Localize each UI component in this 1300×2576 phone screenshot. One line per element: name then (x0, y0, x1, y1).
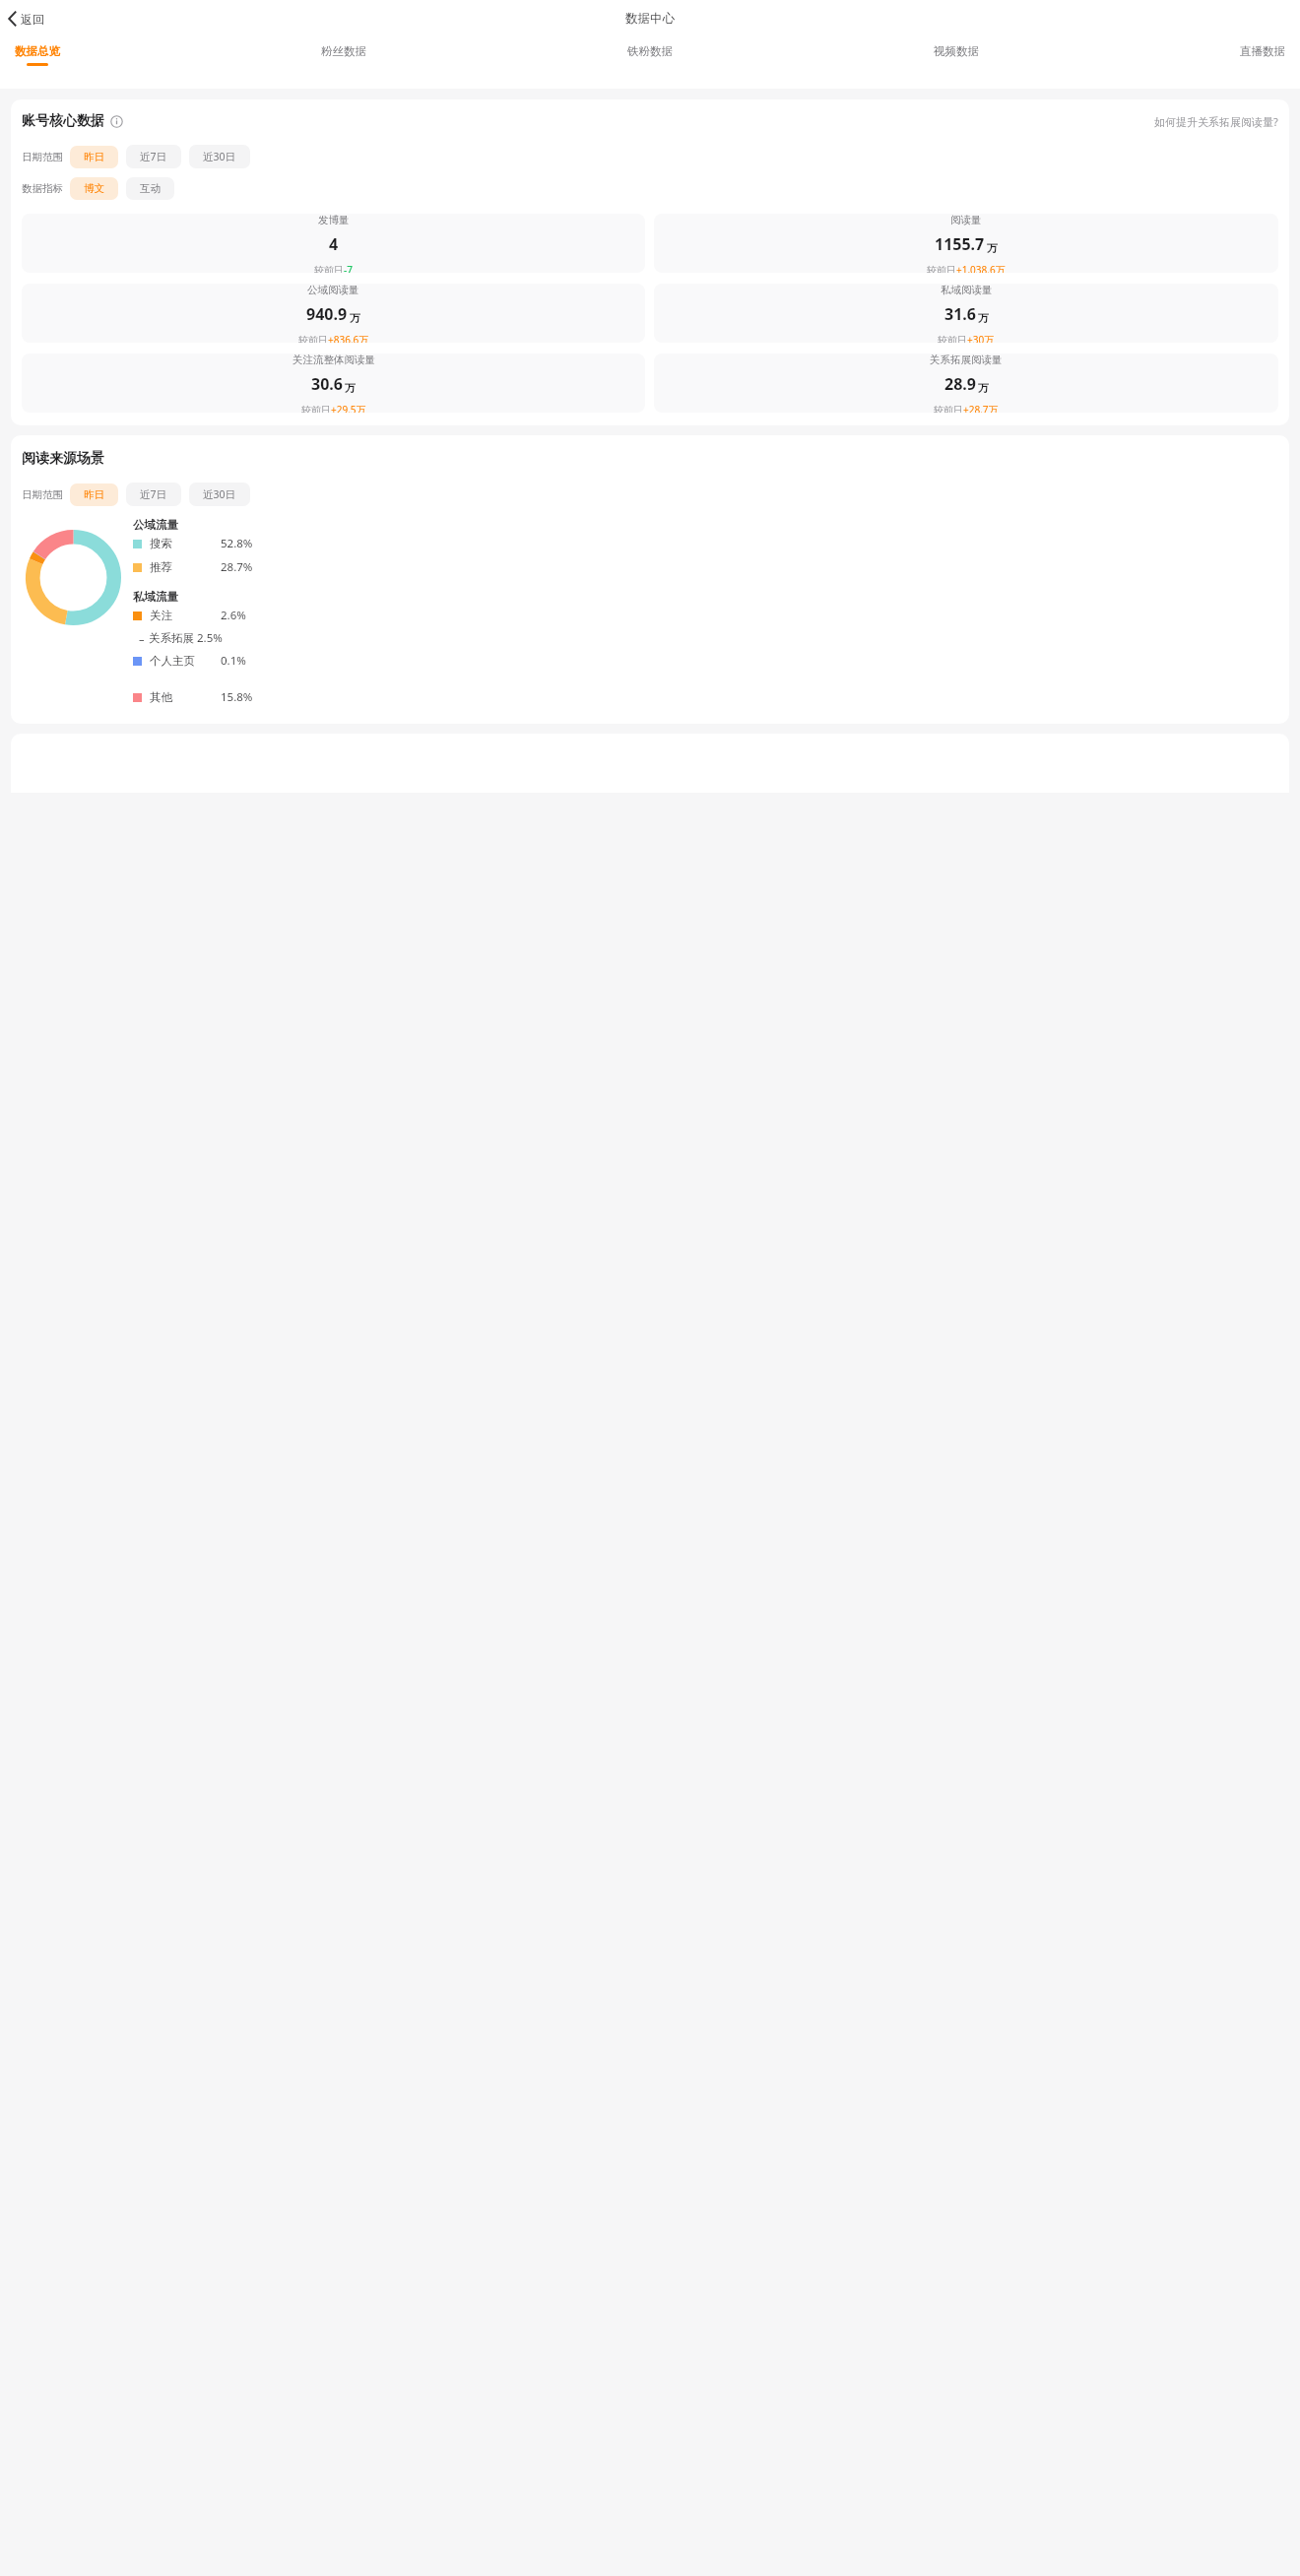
button[interactable]: 互动 (126, 177, 174, 200)
staticText: 近7日 (140, 487, 167, 501)
staticText: 视频数据 (934, 44, 979, 58)
staticText: 15.8% (221, 689, 253, 705)
staticText: 数据中心 (625, 11, 675, 27)
staticText: 万 (978, 311, 989, 325)
staticText: 52.8% (221, 536, 253, 551)
button[interactable]: 近7日 (126, 483, 181, 506)
button[interactable]: 如何提升关系拓展阅读量? (1154, 114, 1278, 129)
staticText: 发博量 (318, 214, 350, 226)
staticText: 关注 (150, 609, 172, 622)
staticText: 1155.7 (935, 233, 985, 255)
staticText: 公域流量 (133, 518, 178, 532)
button[interactable]: 关注流整体阅读量 (22, 354, 645, 413)
button[interactable]: 昨日 (70, 146, 118, 168)
button[interactable]: 近30日 (189, 483, 250, 506)
staticText: 近30日 (203, 487, 236, 501)
staticText: 近30日 (203, 150, 236, 163)
staticText: 30.6 (311, 373, 343, 395)
staticText: 公域阅读量 (307, 284, 359, 296)
button[interactable]: 说明 (110, 115, 123, 128)
button[interactable]: 铁粉数据 (621, 37, 679, 66)
button[interactable]: 数据总览 (9, 37, 66, 66)
staticText: 28.7% (221, 559, 253, 575)
button[interactable]: 公域阅读量 (22, 284, 645, 343)
staticText: 万 (345, 381, 356, 395)
staticText: 私域阅读量 (941, 284, 993, 296)
staticText: 昨日 (84, 488, 104, 501)
button[interactable]: 阅读量 (654, 214, 1278, 273)
staticText: 搜索 (150, 537, 172, 550)
staticText: 私域流量 (133, 590, 178, 604)
staticText: 较前日+29.5万 (301, 403, 366, 413)
staticText: 直播数据 (1240, 44, 1285, 58)
staticText: 万 (987, 241, 998, 255)
staticText: 0.1% (221, 653, 246, 669)
staticText: 较前日+30万 (938, 333, 995, 343)
staticText: 日期范围 (22, 151, 63, 163)
staticText: 较前日-7 (314, 263, 353, 273)
staticText: 万 (978, 381, 989, 395)
staticText: 较前日+1,038.6万 (927, 263, 1006, 273)
staticText: – (139, 631, 145, 646)
staticText: 个人主页 (150, 654, 195, 668)
button[interactable]: 视频数据 (928, 37, 985, 66)
staticText: 较前日+836.6万 (298, 333, 369, 343)
staticText: 关系拓展 2.5% (149, 630, 223, 646)
staticText: 数据总览 (15, 44, 60, 58)
staticText: 4 (329, 233, 339, 255)
button[interactable]: 近7日 (126, 145, 181, 168)
staticText: 关注流整体阅读量 (292, 354, 375, 366)
staticText: 阅读来源场景 (22, 450, 104, 468)
staticText: 日期范围 (22, 488, 63, 501)
staticText: 互动 (140, 182, 161, 195)
staticText: 昨日 (84, 151, 104, 163)
staticText: 返回 (21, 12, 44, 27)
staticText: 推荐 (150, 560, 172, 574)
button[interactable]: 私域阅读量 (654, 284, 1278, 343)
staticText: 较前日+28.7万 (934, 403, 999, 413)
staticText: 博文 (84, 182, 104, 195)
staticText: 2.6% (221, 608, 246, 623)
button[interactable]: 直播数据 (1234, 37, 1291, 66)
button[interactable]: 发博量 (22, 214, 645, 273)
staticText: 近7日 (140, 150, 167, 163)
staticText: 关系拓展阅读量 (930, 354, 1003, 366)
staticText: 28.9 (944, 373, 976, 395)
button[interactable]: 关系拓展阅读量 (654, 354, 1278, 413)
staticText: 其他 (150, 690, 172, 704)
staticText: 万 (350, 311, 360, 325)
button[interactable]: 返回 (3, 8, 49, 30)
button[interactable]: 近30日 (189, 145, 250, 168)
staticText: 账号核心数据 (22, 112, 104, 130)
staticText: 940.9 (306, 303, 348, 325)
button[interactable]: 昨日 (70, 483, 118, 506)
staticText: 铁粉数据 (627, 44, 673, 58)
staticText: 粉丝数据 (321, 44, 366, 58)
button[interactable]: 博文 (70, 177, 118, 200)
staticText: 阅读量 (950, 214, 982, 226)
staticText: 数据指标 (22, 182, 63, 195)
button[interactable]: 粉丝数据 (315, 37, 372, 66)
staticText: 31.6 (944, 303, 976, 325)
